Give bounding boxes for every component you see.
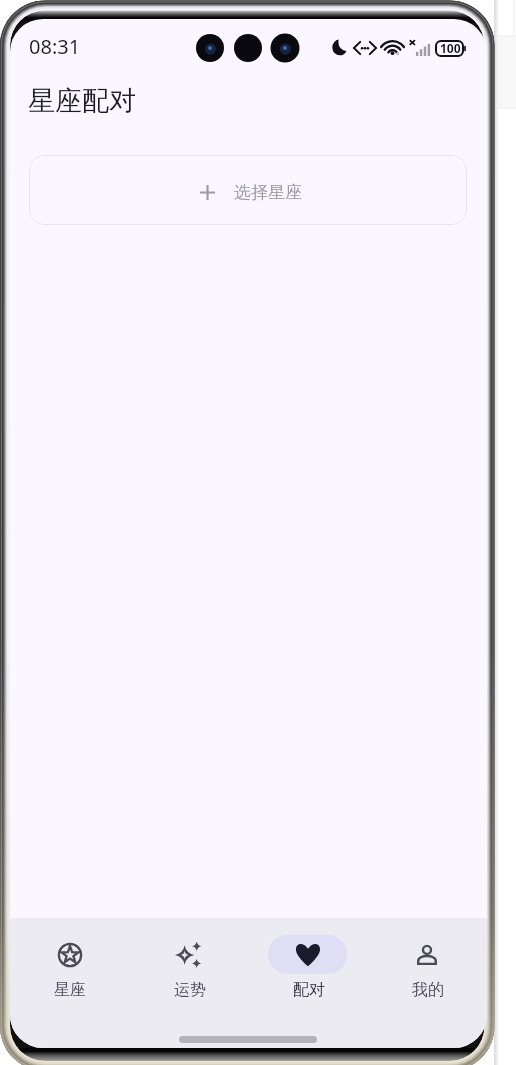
button[interactable]: 配对 <box>249 918 368 1000</box>
staticText: 我的 <box>412 980 444 1000</box>
staticText: 选择星座 <box>234 182 302 203</box>
button[interactable]: 运势 <box>130 918 249 1000</box>
button[interactable]: 选择星座 <box>29 155 467 225</box>
staticText: 08:31 <box>29 33 81 60</box>
staticText: 100 <box>440 40 461 56</box>
button[interactable]: 星座 <box>10 918 130 1000</box>
staticText: 运势 <box>174 980 206 1000</box>
button[interactable]: 我的 <box>368 918 487 1000</box>
staticText: 星座 <box>54 980 86 1000</box>
staticText: 配对 <box>293 980 325 1000</box>
staticText: 星座配对 <box>28 84 136 118</box>
